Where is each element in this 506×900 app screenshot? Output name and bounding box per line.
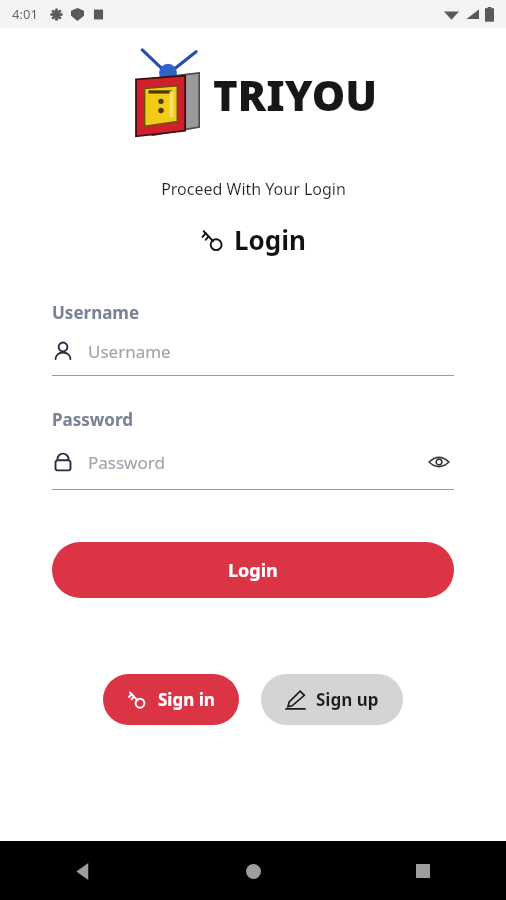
staticText: Username [52,301,140,324]
button[interactable]: Login [52,542,454,598]
button[interactable]: Home [236,854,270,888]
staticText: Sign in [158,688,215,711]
staticText: Password [88,451,165,474]
button[interactable]: Back [66,854,100,888]
button[interactable]: Sign in [103,674,239,725]
button[interactable]: Recent apps [406,854,440,888]
staticText: Sign up [316,688,379,711]
staticText: Proceed With Your Login [161,178,346,200]
staticText: Password [52,408,133,431]
staticText: Username [88,340,171,363]
staticText: TRIYOU [213,66,378,123]
staticText: 4:01 [12,5,38,23]
button[interactable]: Username [52,340,454,363]
button[interactable]: Sign up [261,674,403,725]
staticText: Login [234,222,306,257]
staticText: Login [228,558,278,583]
button[interactable]: Show password [424,447,454,477]
button[interactable]: Password [52,447,454,477]
